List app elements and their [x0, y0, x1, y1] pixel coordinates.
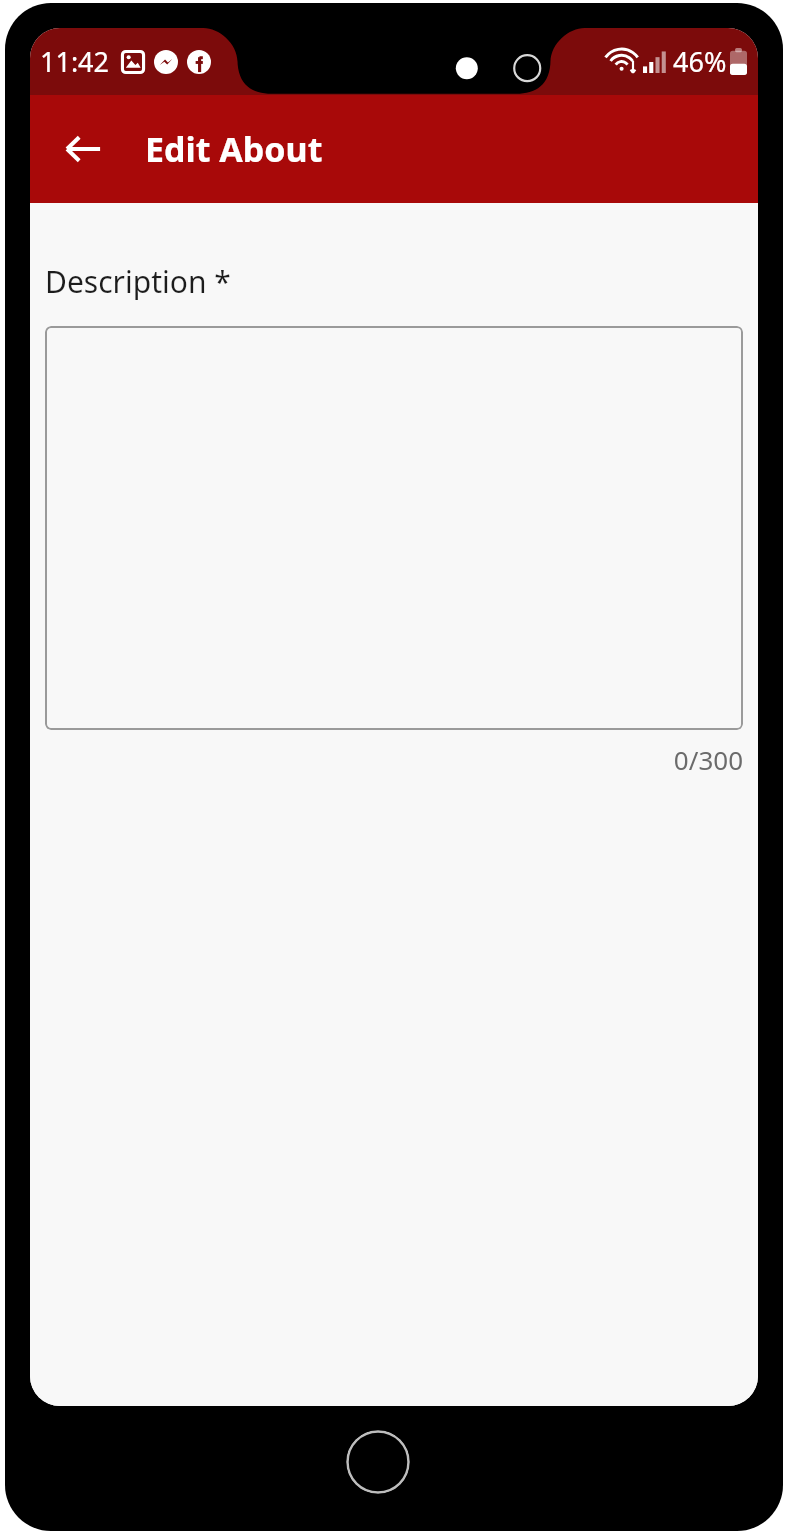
staticText: 46%: [673, 43, 727, 80]
staticText: 0/300: [45, 742, 743, 777]
button[interactable]: [45, 326, 743, 730]
staticText: 11:42: [40, 43, 110, 80]
staticText: Description *: [45, 261, 231, 302]
button[interactable]: Home: [346, 1430, 410, 1494]
button[interactable]: Back: [59, 125, 107, 173]
staticText: Edit About: [145, 126, 323, 172]
